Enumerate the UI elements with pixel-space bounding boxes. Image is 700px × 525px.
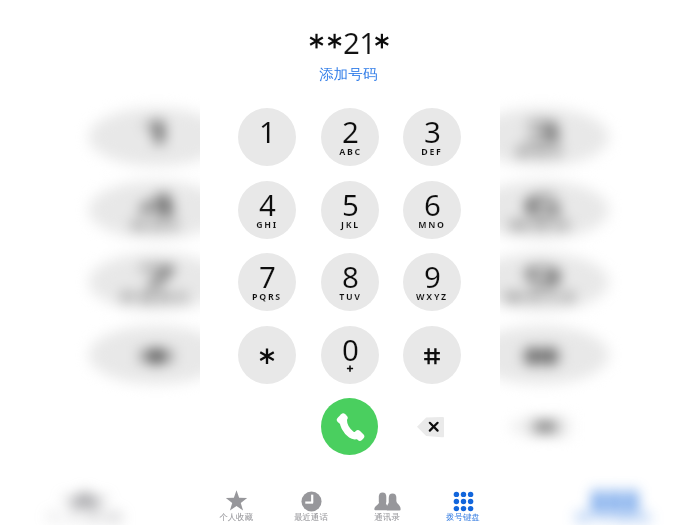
staticText: 9	[424, 256, 441, 296]
staticText: PQRS	[121, 291, 191, 303]
button[interactable]	[403, 326, 461, 384]
staticText: JKL	[329, 219, 373, 231]
staticText: GHI	[131, 219, 182, 231]
staticText: JKL	[341, 219, 360, 231]
staticText: 8	[331, 256, 371, 296]
staticText: 3	[424, 111, 441, 151]
staticText: 4	[259, 184, 276, 224]
staticText: 3	[523, 111, 562, 151]
button[interactable]: 7	[89, 253, 224, 311]
button[interactable]: 拨号键盘	[432, 485, 494, 525]
staticText: PQRS	[252, 291, 282, 303]
staticText: 9	[523, 256, 562, 296]
button[interactable]	[238, 326, 296, 384]
button[interactable]: 个人收藏	[205, 485, 267, 525]
button[interactable]: Call	[321, 398, 378, 455]
button[interactable]: 添加号码	[319, 65, 378, 83]
staticText: TUV	[324, 291, 378, 303]
staticText: ABC	[324, 146, 378, 158]
staticText: 2	[331, 111, 371, 151]
button[interactable]: 7	[238, 253, 296, 311]
button[interactable]: 5	[282, 181, 418, 239]
staticText: 个人收藏	[219, 512, 253, 523]
button[interactable]: 8	[321, 253, 379, 311]
button[interactable]: 8	[282, 253, 418, 311]
staticText: 最近通话	[219, 512, 299, 523]
button[interactable]: 9	[403, 253, 461, 311]
staticText: 6	[523, 184, 562, 224]
staticText: 个人收藏	[44, 512, 124, 523]
button[interactable]: 2	[282, 108, 418, 166]
button[interactable]: 6	[474, 181, 609, 239]
staticText: 0	[342, 329, 359, 369]
staticText: 通讯录	[406, 512, 467, 523]
button[interactable]: 个人收藏	[12, 485, 156, 525]
button[interactable]: 1	[238, 108, 296, 166]
button[interactable]: 9	[474, 253, 609, 311]
button[interactable]: 3	[403, 108, 461, 166]
button[interactable]	[474, 326, 609, 384]
staticText: DEF	[516, 146, 567, 158]
staticText: MNO	[418, 219, 446, 231]
button[interactable]: 2	[321, 108, 379, 166]
staticText: 2	[342, 111, 359, 151]
staticText: 通讯录	[374, 512, 400, 523]
staticText: ABC	[339, 146, 362, 158]
staticText: 6	[424, 184, 441, 224]
staticText: 5	[331, 184, 371, 224]
button[interactable]: 最近通话	[280, 485, 342, 525]
staticText: 1	[259, 111, 276, 151]
staticText: 拨号键盘	[574, 512, 653, 523]
button[interactable]: 通讯录	[364, 485, 509, 525]
button[interactable]: 6	[403, 181, 461, 239]
button[interactable]: 0	[321, 326, 379, 384]
staticText: 5	[342, 184, 359, 224]
button[interactable]: 4	[238, 181, 296, 239]
staticText: 拨号键盘	[446, 512, 480, 523]
staticText: 21	[334, 22, 411, 62]
staticText: 4	[138, 184, 177, 224]
staticText: WXYZ	[416, 291, 448, 303]
button[interactable]: 4	[89, 181, 224, 239]
button[interactable]: 3	[474, 108, 609, 166]
staticText: GHI	[256, 219, 278, 231]
button[interactable]: 5	[321, 181, 379, 239]
button[interactable]	[89, 326, 224, 384]
button[interactable]: 最近通话	[187, 485, 331, 525]
staticText: 7	[259, 256, 276, 296]
button[interactable]: 添加号码	[278, 65, 415, 83]
staticText: WXYZ	[504, 291, 579, 303]
staticText: DEF	[421, 146, 443, 158]
staticText: MNO	[509, 219, 574, 231]
button[interactable]: Delete	[497, 411, 581, 443]
staticText: 7	[138, 256, 177, 296]
staticText: 8	[342, 256, 359, 296]
button[interactable]: Delete	[413, 411, 449, 443]
staticText: 1	[138, 111, 177, 151]
button[interactable]: 1	[89, 108, 224, 166]
staticText: TUV	[339, 291, 362, 303]
button[interactable]: 0	[282, 326, 418, 384]
button[interactable]: Call	[282, 398, 415, 455]
button[interactable]: 拨号键盘	[541, 485, 686, 525]
button[interactable]: 通讯录	[356, 485, 418, 525]
staticText: 0	[331, 329, 371, 369]
staticText: 21	[343, 22, 376, 62]
staticText: 最近通话	[294, 512, 328, 523]
